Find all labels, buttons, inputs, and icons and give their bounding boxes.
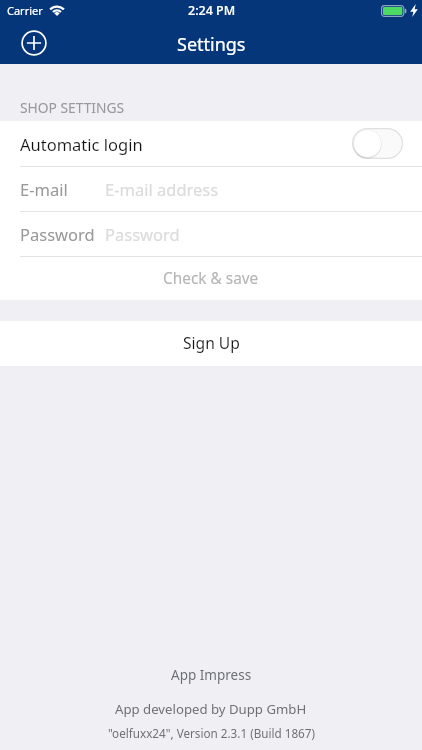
staticText: E-mail address: [105, 178, 219, 200]
button[interactable]: Password: [0, 211, 422, 256]
staticText: Carrier: [7, 3, 43, 18]
staticText: Password: [105, 223, 180, 245]
staticText: Sign Up: [183, 332, 240, 353]
staticText: Automatic login: [20, 133, 143, 155]
staticText: 2:24 PM: [188, 2, 236, 19]
button[interactable]: Sign Up: [0, 321, 422, 366]
staticText: App Impress: [171, 666, 252, 684]
staticText: Settings: [177, 32, 246, 57]
staticText: Check & save: [163, 268, 259, 289]
staticText: E-mail: [20, 178, 68, 200]
staticText: App developed by Dupp GmbH: [115, 700, 307, 718]
button[interactable]: E-mail: [0, 166, 422, 211]
button[interactable]: Check & save: [0, 256, 422, 300]
button[interactable]: Automatic login: [0, 121, 422, 166]
button[interactable]: App Impress: [157, 662, 266, 688]
staticText: "oelfuxx24", Version 2.3.1 (Build 1867): [108, 725, 315, 741]
button[interactable]: Add: [20, 29, 48, 57]
staticText: SHOP SETTINGS: [20, 98, 125, 117]
staticText: Password: [20, 223, 95, 245]
